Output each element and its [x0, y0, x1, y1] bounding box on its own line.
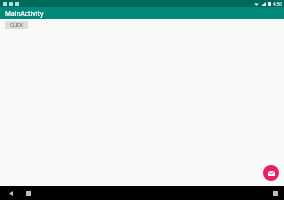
button[interactable]: CLICK [5, 21, 28, 29]
button[interactable]: Back [5, 187, 17, 199]
button[interactable]: Compose message [263, 165, 279, 181]
staticText: 4:56 [273, 1, 282, 7]
button[interactable]: Home [22, 187, 34, 199]
staticText: CLICK [10, 22, 23, 28]
staticText: MainActivity [5, 9, 44, 18]
button[interactable]: Recent apps [269, 187, 281, 199]
